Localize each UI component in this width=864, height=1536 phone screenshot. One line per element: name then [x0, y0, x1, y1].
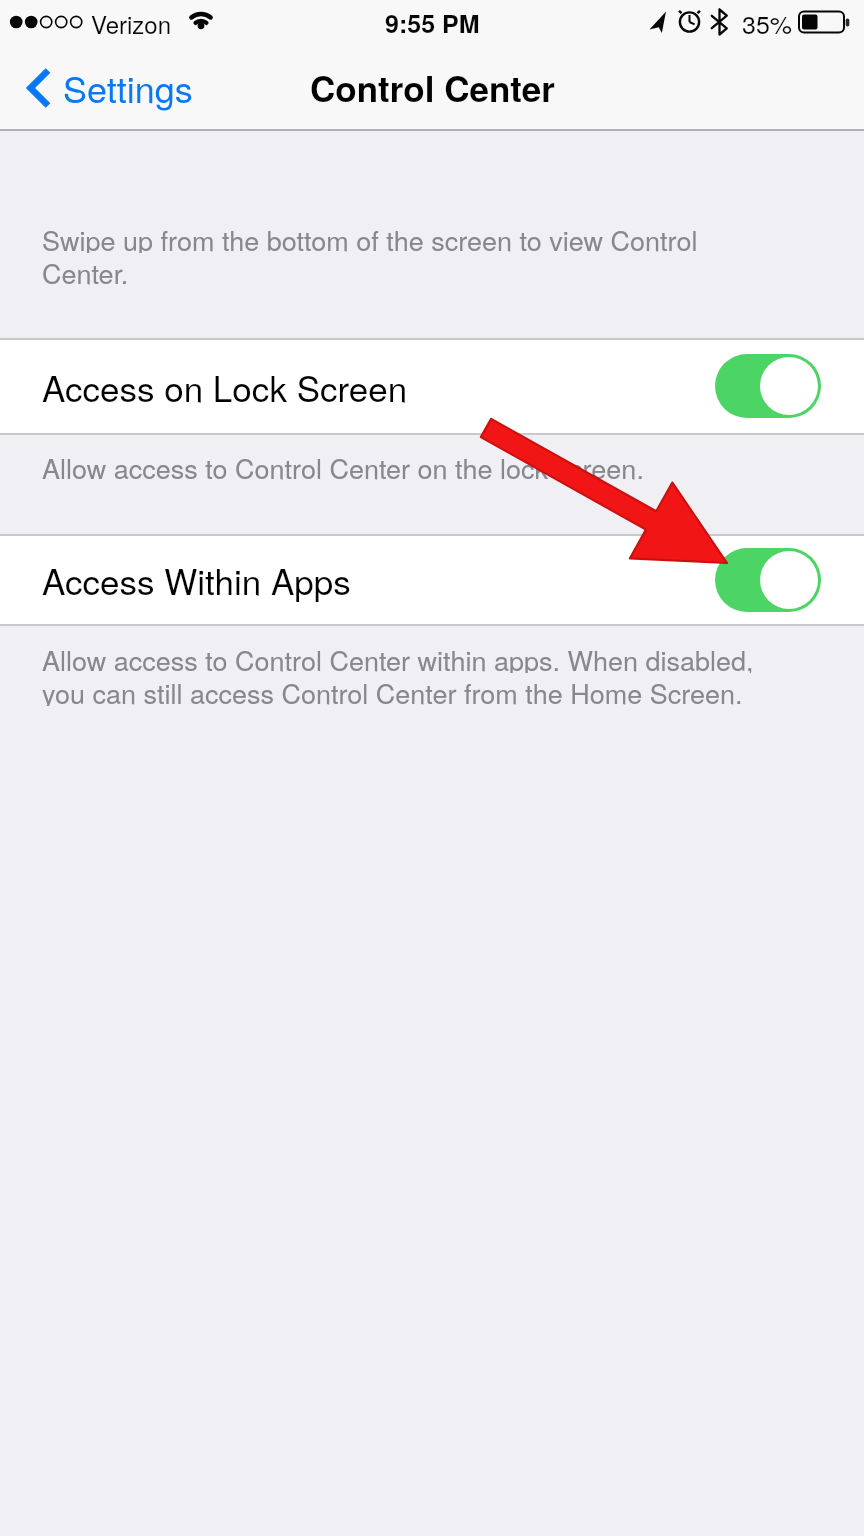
staticText: 35% — [742, 5, 793, 41]
staticText: you can still access Control Center from… — [42, 673, 743, 706]
button[interactable]: Access on Lock Screen — [0, 340, 864, 433]
staticText: Allow access to Control Center within ap… — [42, 640, 754, 673]
button[interactable] — [715, 354, 821, 418]
staticText: Access on Lock Screen — [42, 362, 408, 412]
staticText: Settings — [63, 62, 193, 114]
staticText: Access Within Apps — [42, 555, 351, 605]
staticText: Swipe up from the bottom of the screen t… — [42, 220, 698, 253]
staticText: Control Center — [310, 63, 555, 113]
staticText: Verizon — [91, 6, 172, 40]
button[interactable] — [715, 548, 821, 612]
staticText: Center. — [42, 253, 129, 286]
button[interactable]: Access Within Apps — [0, 536, 864, 624]
staticText: 9:55 PM — [385, 5, 480, 41]
staticText: Allow access to Control Center on the lo… — [42, 448, 644, 481]
button[interactable]: Settings — [27, 46, 193, 130]
